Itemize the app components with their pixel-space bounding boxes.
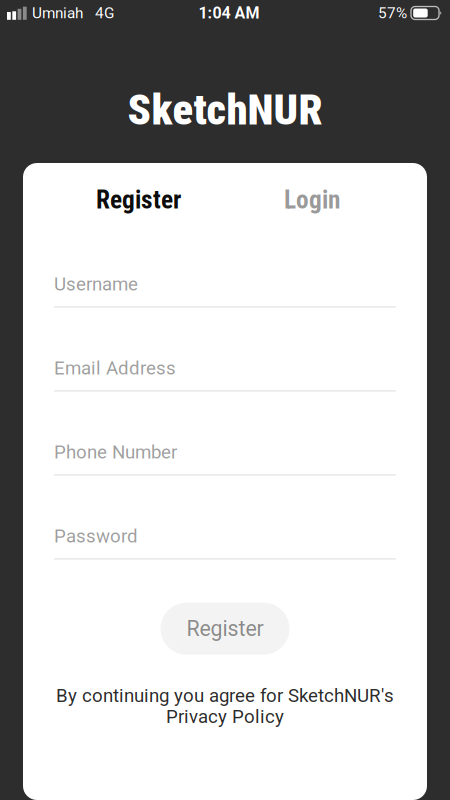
button[interactable]: Username [54, 224, 396, 308]
staticText: Login [284, 185, 340, 215]
staticText: Register [96, 185, 181, 215]
button[interactable]: Phone Number [54, 392, 396, 476]
button[interactable]: Email Address [54, 308, 396, 392]
button[interactable]: Register [160, 603, 289, 655]
staticText: Register [186, 616, 263, 641]
button[interactable]: Password [54, 476, 396, 560]
staticText: Umniah [32, 4, 83, 22]
staticText: By continuing you agree for SketchNUR's [56, 685, 394, 707]
staticText: Username [54, 273, 138, 295]
staticText: Privacy Policy [166, 706, 284, 727]
staticText: SketchNUR [127, 85, 322, 135]
staticText: 1:04 AM [198, 4, 259, 22]
staticText: 57% [378, 4, 407, 22]
staticText: Password [54, 525, 138, 547]
staticText: Phone Number [54, 441, 177, 463]
button[interactable]: Login [284, 185, 340, 215]
staticText: Email Address [54, 357, 176, 379]
button[interactable]: Register [96, 185, 181, 215]
staticText: 4G [95, 4, 114, 22]
